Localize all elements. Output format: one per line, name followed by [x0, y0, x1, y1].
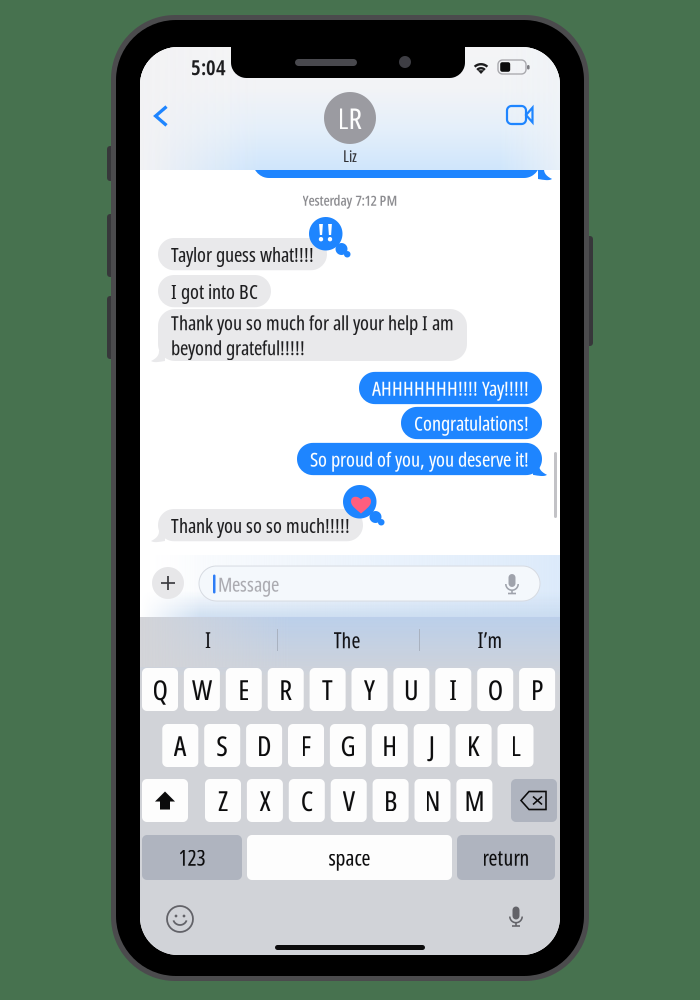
button[interactable]: O [477, 668, 513, 711]
staticText: Z [218, 781, 228, 819]
button[interactable]: J [414, 724, 450, 767]
staticText: space [328, 843, 370, 872]
staticText: Y [364, 670, 375, 708]
button[interactable]: Message field [199, 566, 540, 601]
button[interactable]: X [247, 779, 283, 822]
button[interactable]: N [414, 779, 450, 822]
staticText: Taylor guess what!!!! [171, 240, 314, 268]
button[interactable]: E [226, 668, 262, 711]
staticText: U [404, 670, 419, 708]
staticText: B [384, 781, 397, 819]
button[interactable]: D [246, 724, 282, 767]
button[interactable]: I [158, 625, 258, 655]
button[interactable]: W [184, 668, 220, 711]
staticText: W [192, 670, 212, 708]
staticText: Thank you so much for all your help I am [171, 309, 454, 336]
staticText: J [429, 726, 435, 764]
staticText: return [482, 843, 529, 872]
staticText: S [216, 726, 228, 764]
button[interactable]: R [268, 668, 304, 711]
staticText: L [510, 726, 520, 764]
button[interactable]: I’m [440, 625, 540, 655]
button[interactable]: T [310, 668, 346, 711]
staticText: R [279, 670, 292, 708]
button[interactable]: Liz profile [324, 92, 376, 144]
staticText: C [301, 781, 313, 819]
staticText: T [322, 670, 333, 708]
button[interactable]: Delete [511, 779, 557, 822]
staticText: Yesterday 7:12 PM [302, 190, 397, 210]
staticText: 123 [178, 843, 205, 872]
staticText: A [174, 726, 187, 764]
staticText: I [205, 625, 211, 655]
staticText: K [467, 726, 480, 764]
staticText: X [259, 781, 270, 819]
button[interactable]: The [297, 625, 397, 655]
button[interactable]: Shift [142, 779, 188, 822]
staticText: I [449, 670, 457, 708]
button[interactable]: FaceTime call [495, 93, 543, 137]
button[interactable]: return [457, 835, 555, 880]
staticText: I’m [477, 625, 502, 655]
button[interactable]: G [330, 724, 366, 767]
staticText: I got into BC [171, 277, 258, 305]
staticText: Thank you so so much!!!!! [171, 511, 350, 539]
button[interactable]: V [331, 779, 367, 822]
button[interactable]: C [289, 779, 325, 822]
button[interactable]: H [372, 724, 408, 767]
button[interactable]: Dictation [506, 904, 526, 930]
button[interactable]: L [497, 724, 533, 767]
staticText: H [382, 726, 397, 764]
button[interactable]: Apps [152, 567, 184, 599]
staticText: Congratulations! [414, 409, 529, 437]
button[interactable]: Back [144, 93, 188, 137]
staticText: 5:04 [191, 52, 226, 82]
staticText: Liz [343, 145, 357, 167]
button[interactable]: M [456, 779, 492, 822]
button[interactable]: S [204, 724, 240, 767]
staticText: LR [337, 98, 362, 138]
staticText: M [464, 781, 484, 819]
button[interactable]: U [393, 668, 429, 711]
button[interactable]: Emoji keyboard [166, 905, 194, 933]
staticText: D [257, 726, 271, 764]
button[interactable]: 123 [142, 835, 242, 880]
button[interactable]: Q [142, 668, 178, 711]
staticText: E [238, 670, 249, 708]
button[interactable]: Y [351, 668, 387, 711]
staticText: The [333, 625, 360, 655]
staticText: Message [218, 570, 279, 598]
staticText: O [488, 670, 503, 708]
staticText: So proud of you, you deserve it! [310, 445, 529, 473]
staticText: F [300, 726, 311, 764]
button[interactable]: K [456, 724, 492, 767]
staticText: beyond grateful!!!!! [171, 334, 305, 361]
button[interactable]: F [288, 724, 324, 767]
staticText: Q [152, 670, 167, 708]
staticText: P [531, 670, 543, 708]
staticText: AHHHHHHH!!!! Yay!!!!! [372, 374, 529, 402]
staticText: V [343, 781, 355, 819]
button[interactable]: B [373, 779, 409, 822]
button[interactable]: I [435, 668, 471, 711]
staticText: N [424, 781, 440, 819]
button[interactable]: space [247, 835, 452, 880]
button[interactable]: A [162, 724, 198, 767]
button[interactable]: P [519, 668, 555, 711]
button[interactable]: Z [205, 779, 241, 822]
staticText: G [340, 726, 355, 764]
